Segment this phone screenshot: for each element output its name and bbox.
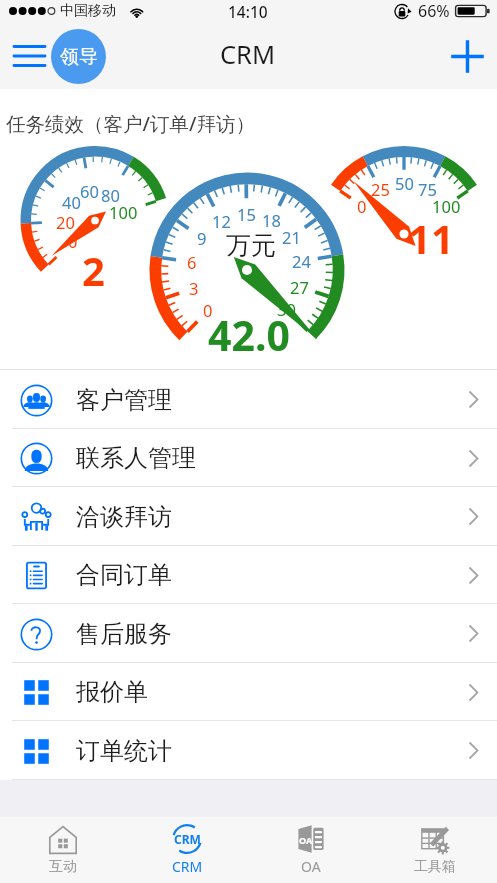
button[interactable]: 客户管理 xyxy=(0,370,497,429)
staticText: 订单统计 xyxy=(76,736,172,766)
staticText: 60 xyxy=(80,180,99,202)
staticText: 100 xyxy=(109,201,138,223)
button[interactable]: 订单统计 xyxy=(0,721,497,780)
staticText: 12 xyxy=(212,210,231,232)
staticText: CRM xyxy=(174,831,201,847)
button[interactable]: 互动 xyxy=(0,817,125,883)
staticText: 9 xyxy=(197,227,207,249)
staticText: 50 xyxy=(395,172,414,194)
button[interactable]: OA xyxy=(249,817,373,883)
button[interactable]: CRM xyxy=(125,817,249,883)
staticText: 80 xyxy=(101,184,120,206)
staticText: 互动 xyxy=(49,858,77,876)
button[interactable]: 工具箱 xyxy=(373,817,497,883)
staticText: OA xyxy=(299,834,313,846)
staticText: 售后服务 xyxy=(76,619,172,649)
staticText: 任务绩效（客户/订单/拜访） xyxy=(6,110,256,137)
staticText: 15 xyxy=(237,203,256,225)
staticText: 0 xyxy=(68,230,78,252)
staticText: 75 xyxy=(418,178,437,200)
staticText: CRM xyxy=(220,37,276,72)
staticText: 21 xyxy=(282,226,301,248)
staticText: 0 xyxy=(203,299,213,321)
staticText: 联系人管理 xyxy=(76,443,196,473)
staticText: 42.0 xyxy=(208,307,290,363)
staticText: 27 xyxy=(290,276,309,298)
staticText: 洽谈拜访 xyxy=(76,502,172,532)
staticText: 报价单 xyxy=(76,677,148,707)
staticText: 18 xyxy=(262,209,281,231)
button[interactable]: 联系人管理 xyxy=(0,429,497,487)
button[interactable]: Add xyxy=(445,34,490,79)
button[interactable]: Menu xyxy=(6,35,53,76)
staticText: OA xyxy=(301,857,321,876)
staticText: 客户管理 xyxy=(76,385,172,415)
staticText: 30 xyxy=(277,298,296,320)
button[interactable]: 合同订单 xyxy=(0,546,497,604)
staticText: 2 xyxy=(82,243,105,297)
staticText: 领导 xyxy=(60,45,98,69)
staticText: CRM xyxy=(172,857,203,876)
button[interactable]: 洽谈拜访 xyxy=(0,487,497,546)
button[interactable]: 报价单 xyxy=(0,663,497,721)
staticText: 工具箱 xyxy=(414,858,456,876)
staticText: 0 xyxy=(357,195,367,217)
staticText: 24 xyxy=(292,250,311,272)
staticText: 11 xyxy=(408,211,454,265)
button[interactable]: 售后服务 xyxy=(0,604,497,663)
staticText: 40 xyxy=(62,191,81,213)
staticText: 中国移动 xyxy=(60,2,116,20)
staticText: 万元 xyxy=(226,230,276,261)
staticText: 25 xyxy=(371,178,390,200)
staticText: 100 xyxy=(432,195,461,217)
staticText: 6 xyxy=(187,251,197,273)
staticText: 合同订单 xyxy=(76,560,172,590)
button[interactable]: 领导 xyxy=(51,29,106,84)
staticText: 14:10 xyxy=(228,1,268,22)
staticText: 66% xyxy=(418,0,450,22)
staticText: 20 xyxy=(56,211,75,233)
staticText: 3 xyxy=(189,277,199,299)
